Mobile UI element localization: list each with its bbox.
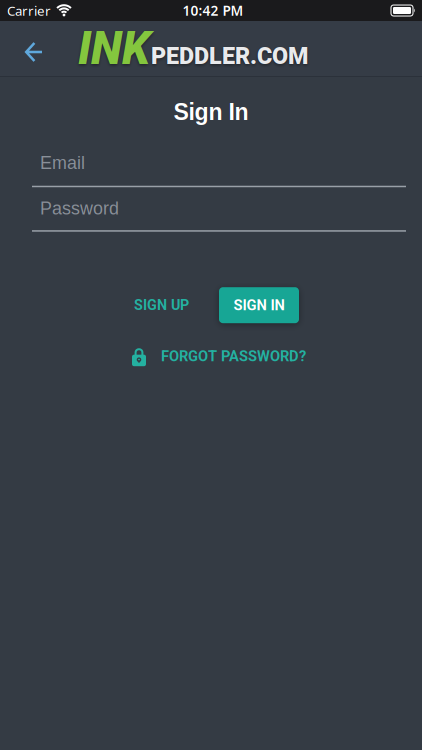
- button[interactable]: Email: [32, 153, 406, 187]
- staticText: Email: [40, 153, 85, 173]
- staticText: Carrier: [7, 1, 51, 20]
- staticText: PEDDLER.COM: [151, 42, 308, 70]
- staticText: 10:42 PM: [182, 1, 243, 20]
- button[interactable]: Back: [0, 21, 42, 76]
- button[interactable]: FORGOT PASSWORD?: [132, 346, 306, 366]
- staticText: Password: [40, 198, 119, 218]
- button[interactable]: SIGN IN: [219, 287, 299, 323]
- staticText: INK: [78, 22, 150, 75]
- button[interactable]: Password: [32, 198, 406, 232]
- staticText: SIGN IN: [233, 297, 284, 314]
- button[interactable]: SIGN UP: [134, 297, 189, 314]
- staticText: Sign In: [173, 99, 248, 125]
- staticText: FORGOT PASSWORD?: [161, 348, 306, 365]
- staticText: SIGN UP: [134, 297, 189, 314]
